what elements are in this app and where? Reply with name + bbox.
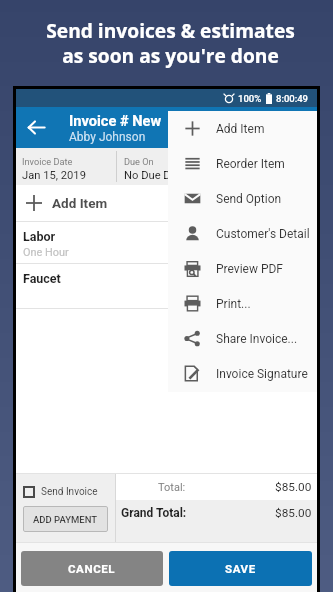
staticText: Faucet [23, 271, 61, 286]
button[interactable]: Add Item [16, 185, 317, 221]
staticText: Send Invoice [41, 486, 98, 498]
button[interactable]: Add Item [168, 111, 317, 146]
button[interactable]: Labor [16, 222, 317, 263]
staticText: Invoice Date [22, 156, 73, 167]
button[interactable]: Back [16, 107, 57, 148]
staticText: One Hour [23, 246, 69, 259]
staticText: Grand Total: [121, 506, 187, 520]
staticText: Customer's Detail [216, 227, 310, 241]
staticText: Share Invoice... [216, 332, 298, 346]
staticText: Labor [23, 229, 56, 244]
staticText: Send Option [216, 192, 282, 206]
button[interactable]: ADD PAYMENT [23, 506, 108, 532]
staticText: $85.00 [275, 480, 312, 494]
staticText: Print... [216, 297, 251, 311]
staticText: 8:00:49 [276, 93, 309, 104]
button[interactable]: Faucet [16, 264, 317, 308]
button[interactable]: Send Invoice [16, 486, 98, 498]
staticText: Add Item [52, 195, 108, 211]
button[interactable]: Share Invoice... [168, 321, 317, 356]
staticText: SAVE [225, 562, 256, 575]
staticText: Jan 15, 2019 [22, 169, 86, 182]
staticText: Reorder Item [216, 157, 285, 171]
staticText: Add Item [216, 122, 265, 136]
button[interactable]: Customer's Detail [168, 216, 317, 251]
button[interactable]: SAVE [169, 551, 312, 586]
button[interactable]: Print... [168, 286, 317, 321]
button[interactable]: Invoice Signature [168, 356, 317, 391]
staticText: Due On [124, 156, 154, 167]
staticText: Invoice # New [69, 112, 162, 129]
staticText: ADD PAYMENT [33, 514, 98, 525]
staticText: 100% [238, 93, 262, 104]
staticText: Preview PDF [216, 262, 283, 276]
button[interactable]: Reorder Item [168, 146, 317, 181]
staticText: Total: [158, 481, 186, 494]
staticText: Send invoices & estimates as soon as you… [4, 17, 333, 69]
staticText: No Due Date [124, 169, 187, 182]
staticText: CANCEL [68, 562, 116, 575]
staticText: Invoice Signature [216, 367, 308, 381]
button[interactable]: CANCEL [21, 551, 163, 586]
staticText: $85.00 [275, 506, 312, 520]
button[interactable]: Send Option [168, 181, 317, 216]
button[interactable]: Preview PDF [168, 251, 317, 286]
staticText: Abby Johnson [69, 130, 146, 144]
